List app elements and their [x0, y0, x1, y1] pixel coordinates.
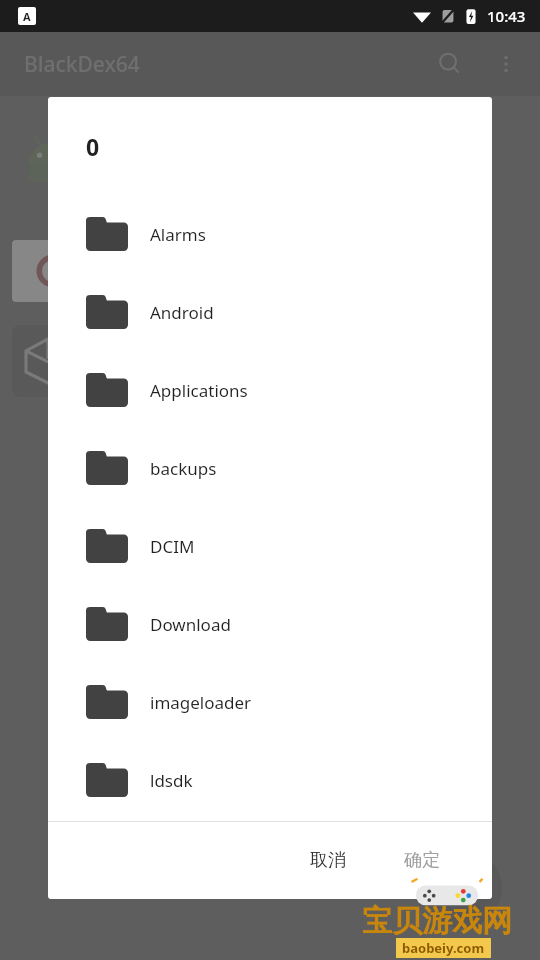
button[interactable]: imageloader [48, 663, 492, 741]
staticText: ldsdk [150, 769, 193, 792]
staticText: Alarms [150, 223, 206, 246]
button[interactable]: backups [48, 429, 492, 507]
button[interactable]: 取消 [292, 839, 364, 882]
staticText: Download [150, 613, 231, 636]
button[interactable]: Alarms [48, 195, 492, 273]
button[interactable]: Action [422, 848, 502, 928]
staticText: Applications [150, 379, 248, 402]
staticText: DCIM [150, 535, 195, 558]
staticText: BlackDex64 [24, 50, 140, 79]
button[interactable]: ldsdk [48, 741, 492, 819]
staticText: baobeiy.com [402, 939, 485, 957]
staticText: imageloader [150, 691, 252, 714]
button[interactable]: 确定 [386, 839, 458, 882]
button[interactable]: Search [428, 42, 472, 86]
staticText: 宝贝游戏网 [362, 902, 512, 940]
staticText: A [23, 9, 31, 24]
staticText: backups [150, 457, 217, 480]
staticText: 0 [86, 131, 100, 162]
button[interactable]: Applications [48, 351, 492, 429]
staticText: Android [150, 301, 214, 324]
button[interactable]: Android [48, 273, 492, 351]
button[interactable]: Download [48, 585, 492, 663]
staticText: 取消 [310, 849, 346, 872]
staticText: 确定 [404, 849, 440, 872]
button[interactable]: DCIM [48, 507, 492, 585]
staticText: 10:43 [487, 6, 526, 26]
